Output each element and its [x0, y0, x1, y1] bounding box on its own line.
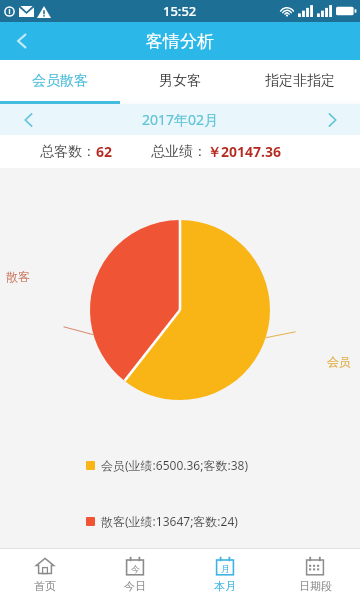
staticText: 日期段 — [299, 579, 332, 593]
button[interactable]: 月 — [180, 549, 270, 600]
staticText: 62 — [96, 142, 113, 161]
button[interactable]: Previous month — [0, 104, 56, 135]
button[interactable]: 会员(业绩:6500.36;客数:38) — [86, 457, 360, 473]
button[interactable]: 会员散客 — [0, 60, 120, 101]
staticText: 总客数： — [40, 143, 96, 161]
staticText: ￥20147.36 — [207, 142, 281, 161]
button[interactable]: 今 — [90, 549, 180, 600]
staticText: 总业绩： — [151, 143, 207, 161]
staticText: 2017年02月 — [56, 110, 304, 129]
staticText: 指定非指定 — [265, 72, 335, 90]
staticText: 男女客 — [159, 72, 201, 90]
button[interactable]: 日期段 — [270, 549, 360, 600]
staticText: 会员(业绩:6500.36;客数:38) — [101, 457, 248, 473]
staticText: 会员 — [327, 354, 351, 369]
button[interactable]: Back — [0, 22, 44, 60]
staticText: 首页 — [34, 579, 56, 593]
staticText: 本月 — [214, 579, 236, 593]
staticText: 会员散客 — [32, 72, 88, 90]
staticText: 今 — [131, 563, 140, 574]
button[interactable]: 指定非指定 — [240, 60, 360, 101]
button[interactable]: 首页 — [0, 549, 90, 600]
button[interactable]: 散客(业绩:13647;客数:24) — [86, 513, 360, 529]
staticText: 15:52 — [163, 2, 197, 20]
staticText: 散客(业绩:13647;客数:24) — [101, 513, 238, 529]
staticText: 散客 — [6, 269, 30, 284]
staticText: 今日 — [124, 579, 146, 593]
button[interactable]: Next month — [304, 104, 360, 135]
staticText: 月 — [221, 563, 230, 574]
button[interactable]: 男女客 — [120, 60, 240, 101]
staticText: 客情分析 — [146, 31, 214, 52]
